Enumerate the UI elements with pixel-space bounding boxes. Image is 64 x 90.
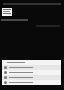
button[interactable]: [2, 70, 61, 75]
button[interactable]: [2, 75, 61, 80]
button[interactable]: Document preview: [2, 8, 12, 16]
button[interactable]: [2, 80, 61, 85]
button[interactable]: [2, 65, 61, 70]
